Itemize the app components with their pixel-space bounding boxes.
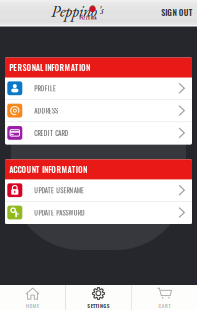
button[interactable]: PROFILE — [5, 77, 192, 100]
button[interactable]: UPDATE PASSWORD — [5, 202, 192, 224]
staticText: HOME — [26, 302, 39, 309]
staticText: UPDATE PASSWORD — [34, 208, 85, 217]
staticText: SIGN OUT — [161, 7, 193, 18]
button[interactable]: ADDRESS — [5, 100, 192, 122]
button[interactable]: HOME — [0, 285, 65, 310]
staticText: SETTINGS — [87, 302, 110, 309]
staticText: PROFILE — [34, 83, 56, 93]
button[interactable]: CART — [132, 285, 197, 310]
button[interactable]: SIGN OUT — [159, 1, 195, 23]
staticText: ACCOUNT INFORMATION — [9, 163, 87, 175]
staticText: CREDIT CARD — [34, 128, 68, 138]
button[interactable]: SETTINGS — [66, 285, 131, 310]
staticText: PERSONAL INFORMATION — [9, 62, 90, 73]
staticText: PIZZERIA — [79, 15, 97, 21]
staticText: Peppino — [51, 1, 97, 21]
button[interactable]: CREDIT CARD — [5, 122, 192, 144]
staticText: CART — [158, 302, 170, 309]
staticText: ADDRESS — [34, 106, 58, 116]
staticText: UPDATE USERNAME — [34, 185, 84, 195]
button[interactable]: UPDATE USERNAME — [5, 179, 192, 202]
staticText: 's — [98, 2, 103, 18]
